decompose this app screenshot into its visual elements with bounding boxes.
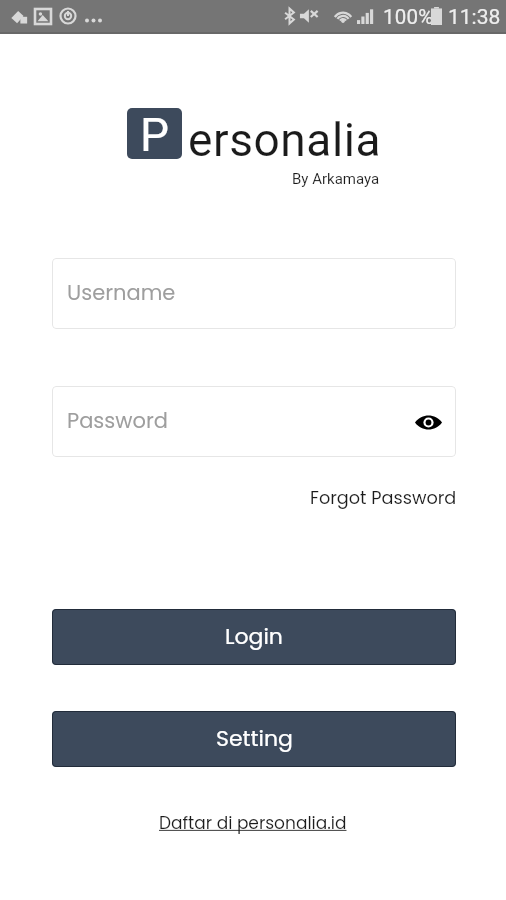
- staticText: Forgot Password: [310, 485, 457, 510]
- button[interactable]: Password: [52, 386, 456, 457]
- button[interactable]: Forgot Password: [310, 485, 457, 510]
- staticText: Username: [67, 278, 176, 307]
- staticText: Daftar di personalia.id: [159, 811, 347, 835]
- staticText: Setting: [216, 723, 293, 754]
- staticText: 100%: [383, 5, 434, 29]
- staticText: 11:38: [448, 5, 501, 30]
- button[interactable]: Login: [52, 609, 456, 665]
- staticText: ersonalia: [188, 113, 382, 167]
- staticText: P: [140, 108, 170, 159]
- staticText: By Arkamaya: [292, 170, 380, 188]
- button[interactable]: Setting: [52, 711, 456, 767]
- staticText: Login: [225, 621, 283, 652]
- staticText: Password: [67, 406, 168, 435]
- button[interactable]: Daftar di personalia.id: [159, 811, 347, 835]
- button[interactable]: Username: [52, 258, 456, 329]
- button[interactable]: Show password: [411, 405, 445, 439]
